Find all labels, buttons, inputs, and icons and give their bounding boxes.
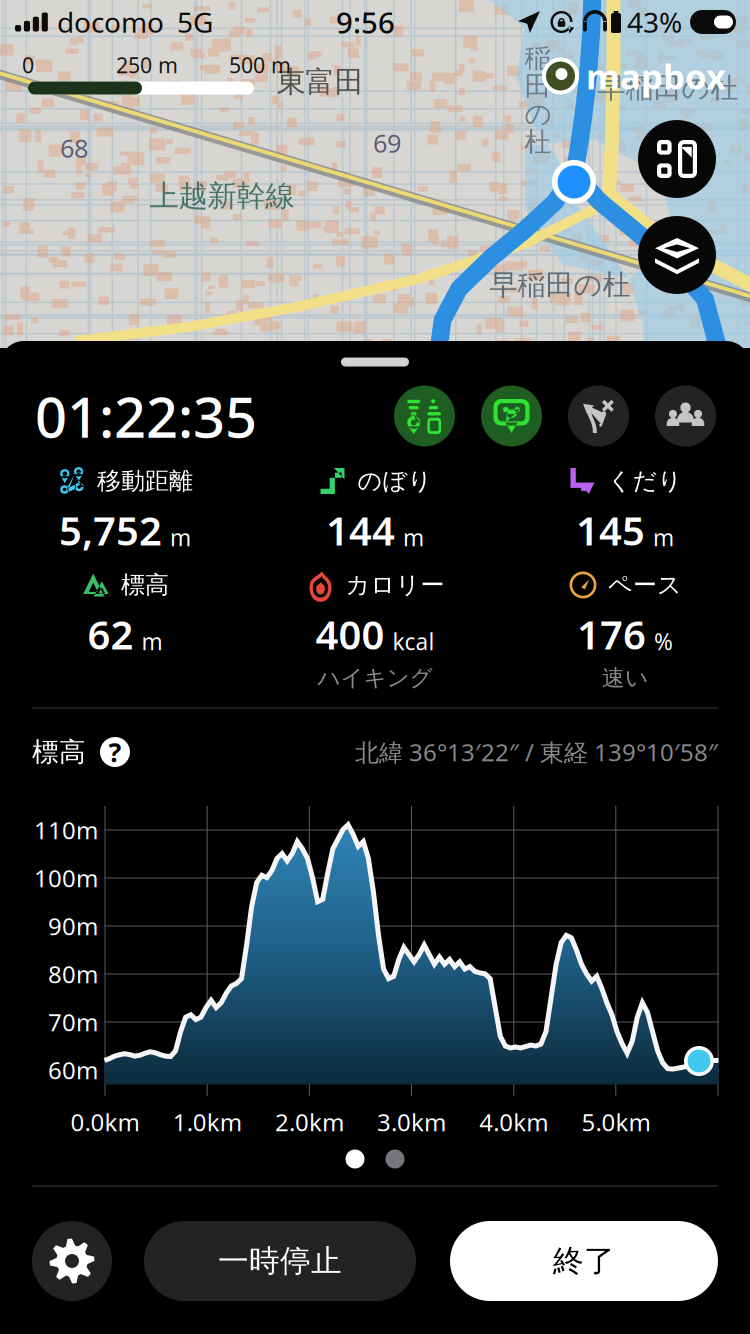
staticText: 一時停止 [218, 1242, 342, 1280]
button[interactable]: Settings [32, 1221, 112, 1301]
staticText: kcal [392, 626, 434, 657]
button[interactable]: Members [655, 385, 716, 446]
staticText: 250 m [116, 51, 178, 79]
staticText: 上越新幹線 [149, 178, 294, 214]
button[interactable]: Map layers [638, 216, 716, 294]
staticText: 東富田 [276, 64, 363, 100]
button[interactable]: Off course [568, 385, 629, 446]
staticText: 早稲田の杜 [597, 71, 738, 105]
staticText: m [403, 522, 424, 553]
staticText: くだり [607, 466, 682, 496]
staticText: 2.0km [275, 1106, 344, 1138]
staticText: の [524, 98, 551, 130]
staticText: 70m [48, 1006, 98, 1038]
staticText: ハイキング [317, 664, 432, 692]
staticText: 5.0km [581, 1106, 650, 1138]
staticText: 稲 [524, 42, 551, 74]
staticText: % [654, 626, 673, 657]
staticText: docomo [57, 3, 164, 41]
staticText: 0 [22, 51, 34, 79]
staticText: 5,752 [59, 503, 162, 556]
staticText: 速い [602, 664, 648, 692]
button[interactable]: Photos [394, 385, 455, 446]
staticText: 176 [577, 607, 646, 660]
staticText: 110m [34, 814, 98, 846]
staticText: 43% [627, 3, 682, 41]
staticText: カロリー [345, 570, 444, 600]
staticText: ペース [608, 570, 682, 600]
staticText: m [653, 522, 674, 553]
staticText: 100m [34, 862, 98, 894]
staticText: 0.0km [70, 1106, 139, 1138]
staticText: mapbox [586, 53, 726, 99]
staticText: 400 [315, 607, 384, 660]
button[interactable]: About elevation [100, 734, 130, 770]
staticText: 3.0km [377, 1106, 446, 1138]
staticText: 標高 [32, 736, 86, 768]
staticText: 杜 [524, 126, 551, 158]
staticText: 144 [326, 503, 395, 556]
staticText: 68 [60, 131, 88, 165]
staticText: 北緯 36°13′22″ / 東経 139°10′58″ [355, 736, 718, 768]
staticText: 500 m [229, 51, 291, 79]
staticText: 80m [48, 958, 98, 990]
button[interactable]: Recenter map [638, 120, 716, 198]
staticText: 62 [87, 607, 133, 660]
staticText: 01:22:35 [35, 379, 257, 453]
staticText: m [141, 626, 162, 657]
staticText: m [170, 522, 191, 553]
staticText: 145 [576, 503, 645, 556]
staticText: ? [108, 734, 121, 770]
button[interactable]: 一時停止 [144, 1221, 416, 1301]
staticText: 90m [48, 910, 98, 942]
staticText: 移動距離 [97, 466, 193, 496]
button[interactable]: 終了 [450, 1221, 718, 1301]
staticText: 1.0km [173, 1106, 242, 1138]
staticText: 4.0km [479, 1106, 548, 1138]
staticText: 5G [177, 3, 213, 41]
staticText: 9:56 [336, 2, 395, 41]
staticText: 早稲田の杜 [489, 268, 630, 302]
staticText: 60m [48, 1054, 98, 1086]
button[interactable]: Post a moment [481, 385, 542, 446]
staticText: 田 [524, 70, 551, 102]
staticText: 69 [373, 126, 401, 160]
staticText: のぼり [357, 466, 432, 496]
staticText: 終了 [553, 1242, 615, 1280]
staticText: 標高 [121, 570, 169, 600]
